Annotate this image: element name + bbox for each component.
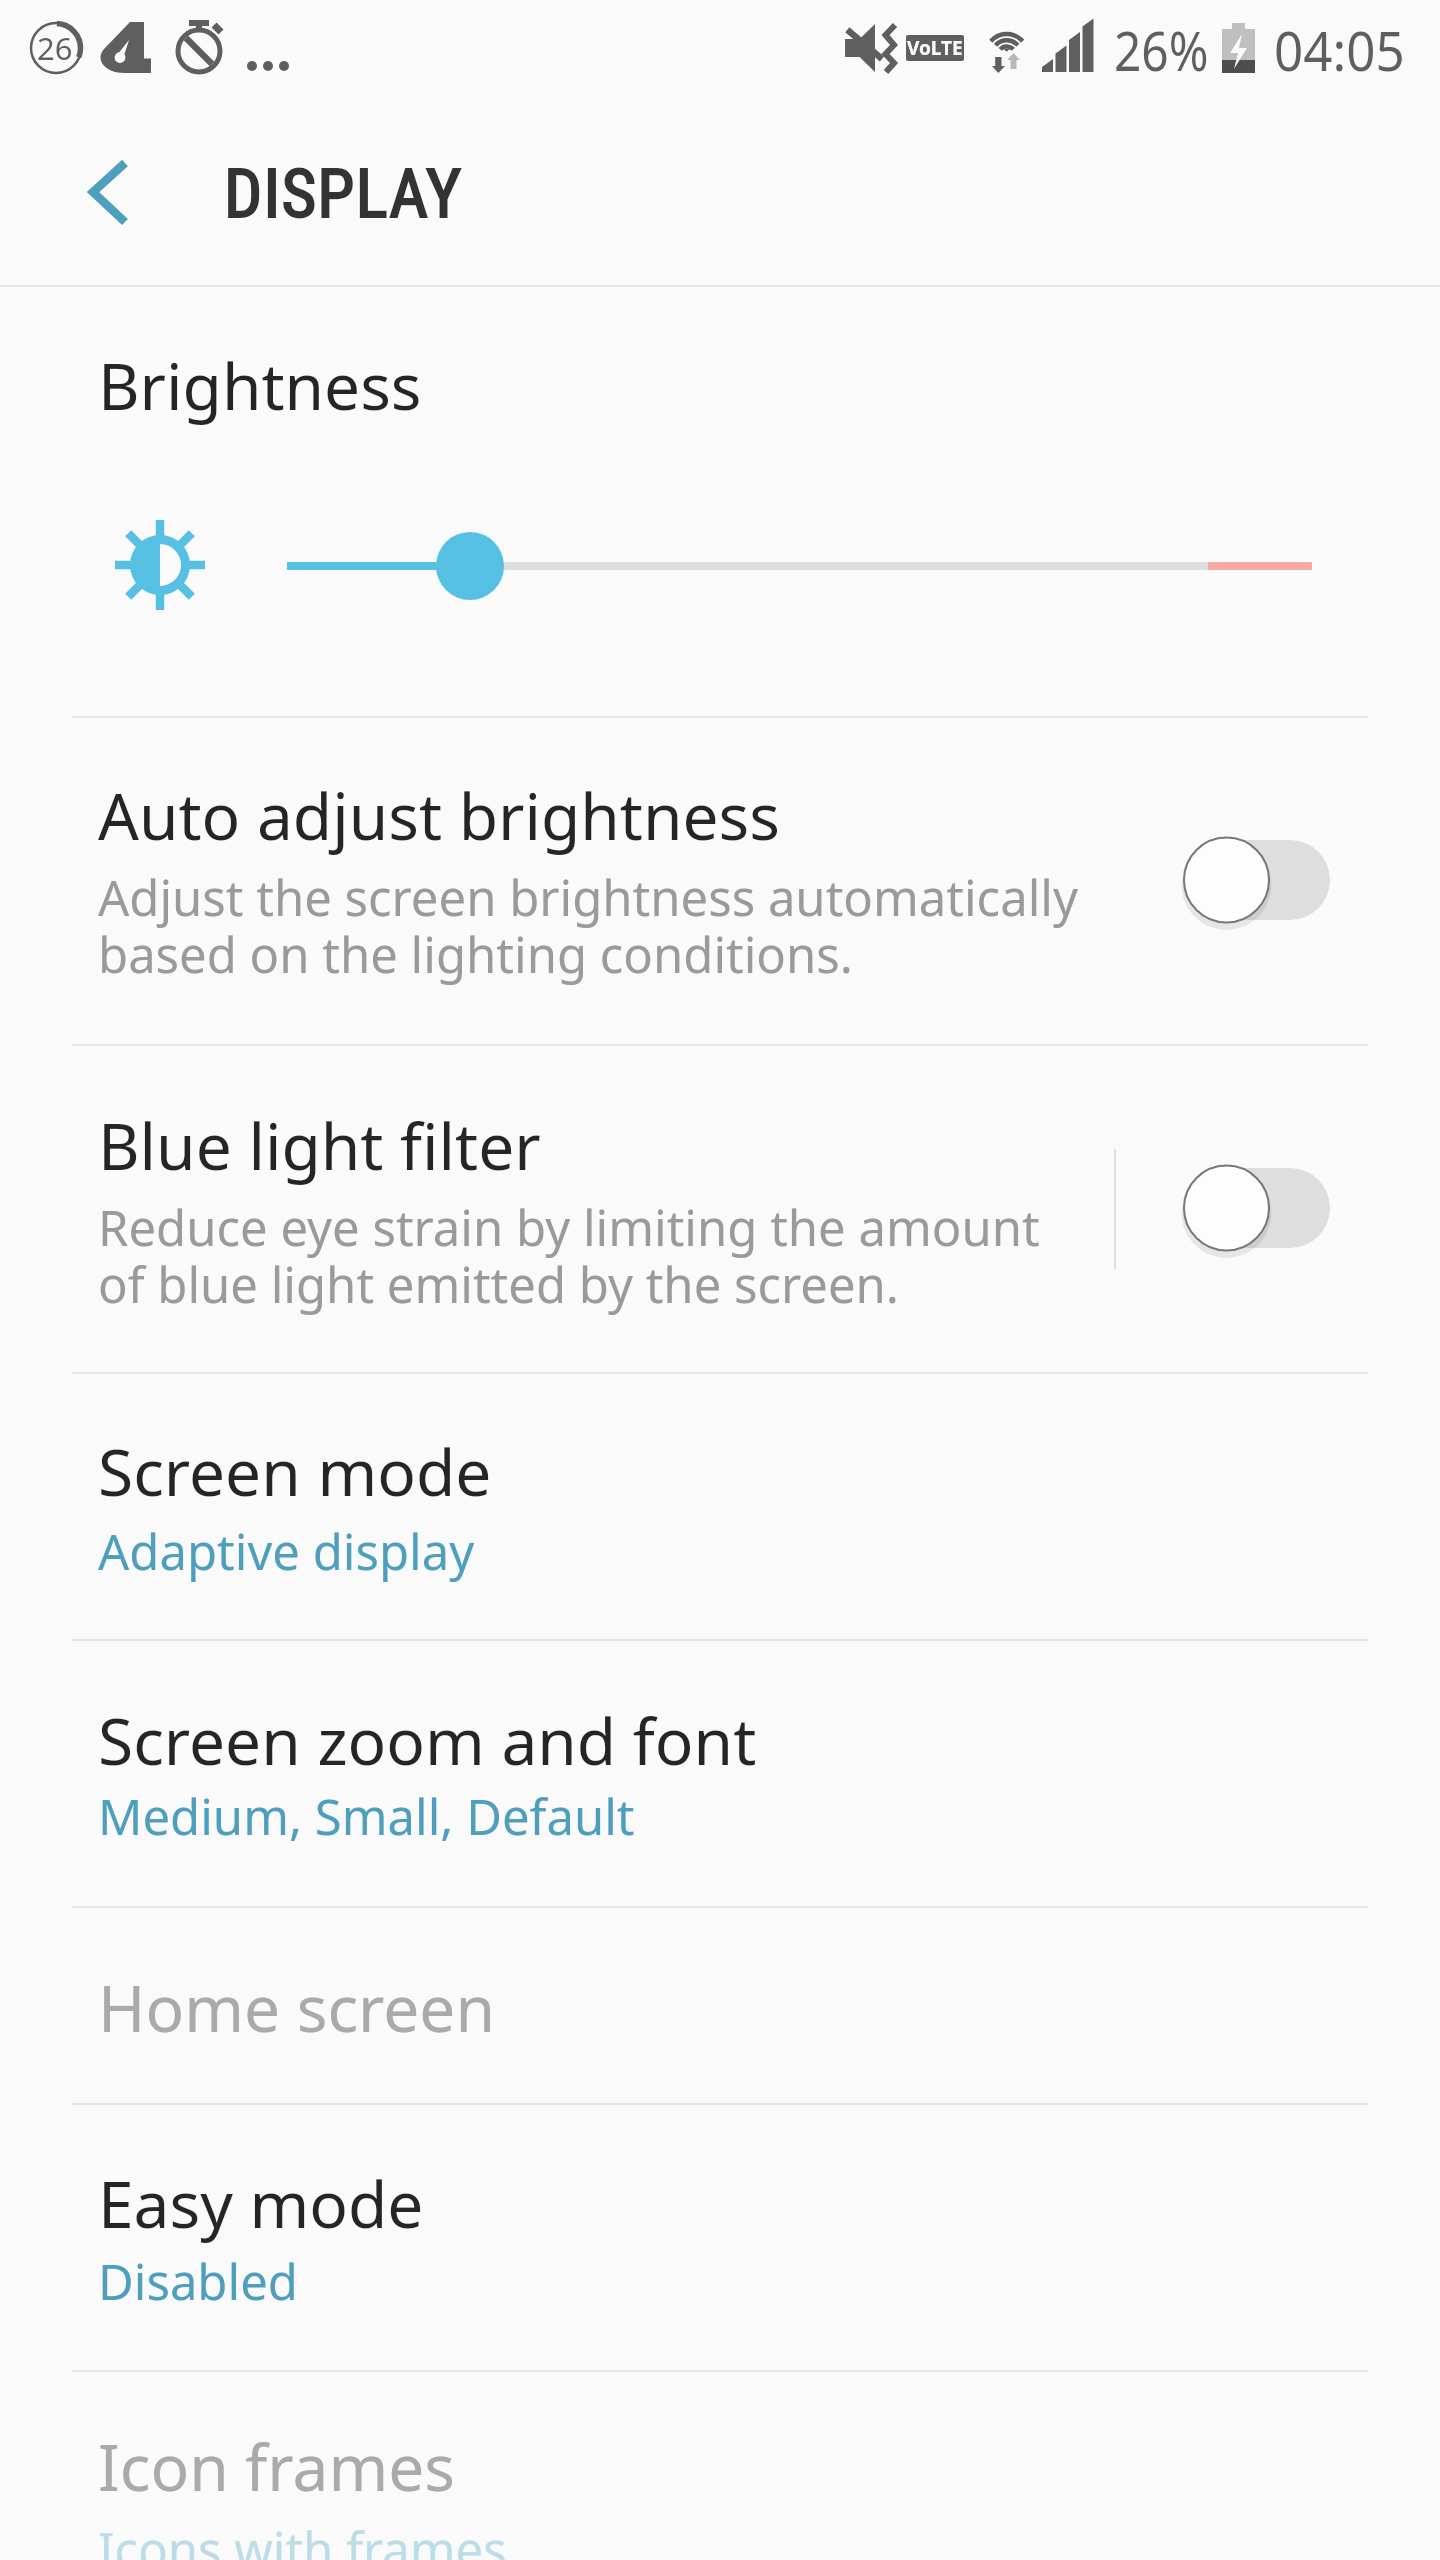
- button[interactable]: Blue light filter toggle, off: [1164, 1148, 1354, 1268]
- button[interactable]: Screen mode: [0, 1375, 1440, 1639]
- button[interactable]: Icon frames: [0, 2373, 1440, 2560]
- staticText: Adjust the screen brightness automatical…: [98, 864, 1078, 931]
- staticText: 26: [37, 27, 73, 69]
- staticText: Icons with frames: [98, 2516, 507, 2560]
- staticText: Easy mode: [98, 2160, 424, 2247]
- staticText: Disabled: [98, 2248, 298, 2315]
- button[interactable]: Auto adjust brightness toggle, off: [1164, 820, 1354, 940]
- staticText: VoLTE: [907, 35, 963, 61]
- button[interactable]: Auto adjust brightness: [0, 719, 1440, 1044]
- button[interactable]: Easy mode: [0, 2106, 1440, 2370]
- staticText: Medium, Small, Default: [98, 1783, 635, 1850]
- staticText: Reduce eye strain by limiting the amount: [98, 1194, 1040, 1261]
- staticText: Screen mode: [98, 1428, 492, 1515]
- staticText: of blue light emitted by the screen.: [98, 1251, 899, 1318]
- button[interactable]: Brightness: [0, 288, 1440, 716]
- button[interactable]: Blue light filter: [0, 1047, 1440, 1372]
- button[interactable]: Screen zoom and font: [0, 1642, 1440, 1906]
- staticText: 26%: [1114, 12, 1209, 87]
- staticText: Screen zoom and font: [98, 1697, 757, 1784]
- staticText: Adaptive display: [98, 1518, 475, 1585]
- staticText: DISPLAY: [224, 155, 463, 234]
- button[interactable]: Navigate up: [60, 130, 186, 256]
- staticText: 04:05: [1274, 12, 1405, 87]
- staticText: Brightness: [98, 342, 422, 429]
- staticText: Icon frames: [98, 2423, 455, 2510]
- staticText: based on the lighting conditions.: [98, 921, 853, 988]
- staticText: Blue light filter: [98, 1102, 541, 1189]
- button[interactable]: Home screen: [0, 1909, 1440, 2103]
- staticText: Auto adjust brightness: [98, 772, 780, 859]
- staticText: Home screen: [98, 1964, 495, 2051]
